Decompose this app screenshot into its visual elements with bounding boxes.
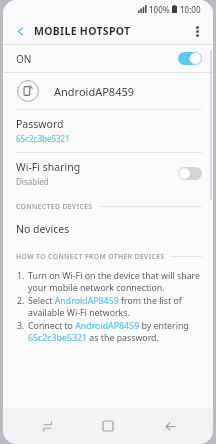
staticText: Disabled [16, 176, 49, 187]
staticText: AndroidAP8459 [54, 84, 135, 99]
staticText: No devices [16, 222, 70, 236]
button[interactable]: Back [11, 22, 29, 40]
staticText: 10:00 [180, 4, 201, 15]
button[interactable]: No devices [3, 222, 213, 236]
staticText: 3. [17, 320, 25, 332]
button[interactable]: Recents [29, 408, 65, 444]
staticText: Turn on Wi-Fi on the device that will sh… [28, 270, 203, 294]
button[interactable]: More options [187, 21, 207, 41]
button[interactable]: Home [90, 408, 126, 444]
button[interactable]: Toggle off [178, 167, 202, 180]
button[interactable]: Toggle on [178, 52, 202, 65]
button[interactable]: Wi-Fi sharing [3, 153, 213, 195]
staticText: Wi-Fi sharing [16, 160, 81, 174]
staticText: 65c2c3be5321 [16, 133, 70, 144]
staticText: HOW TO CONNECT FROM OTHER DEVICES [16, 252, 165, 261]
button[interactable]: Back [152, 408, 188, 444]
other: Hotspot device [17, 80, 39, 102]
staticText: ON [16, 52, 32, 66]
button[interactable]: Hotspot device [3, 73, 213, 109]
staticText: Password [16, 117, 64, 131]
staticText: 1. [17, 270, 25, 282]
staticText: MOBILE HOTSPOT [34, 24, 131, 38]
button[interactable]: ON [3, 45, 213, 72]
staticText: CONNECTED DEVICES [16, 202, 93, 211]
staticText: 100% [149, 4, 170, 15]
staticText: 2. [17, 295, 25, 307]
staticText: Connect to AndroidAP8459 by entering 65c… [28, 320, 203, 344]
button[interactable]: Password [3, 110, 213, 152]
staticText: Select AndroidAP8459 from the list of av… [28, 295, 203, 319]
